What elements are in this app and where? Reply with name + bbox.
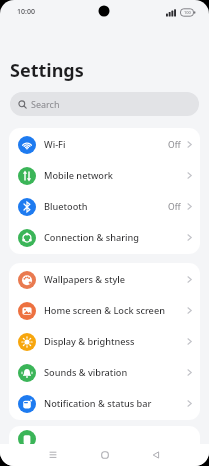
button[interactable]: Sounds & vibration <box>9 357 200 388</box>
button[interactable] <box>9 426 200 457</box>
staticText: Connection & sharing <box>44 231 186 244</box>
button[interactable] <box>46 448 60 462</box>
staticText: Bluetooth <box>44 200 168 213</box>
button[interactable] <box>98 448 112 462</box>
button[interactable]: Connection & sharing <box>9 222 200 253</box>
button[interactable]: Notification & status bar <box>9 388 200 419</box>
button[interactable]: Mobile network <box>9 160 200 191</box>
staticText: Settings <box>10 58 84 83</box>
staticText: Notification & status bar <box>44 397 186 410</box>
staticText: Sounds & vibration <box>44 366 186 379</box>
staticText: Wallpapers & style <box>44 273 186 286</box>
button[interactable]: Search <box>10 92 199 116</box>
staticText: 100 <box>184 10 191 15</box>
button[interactable] <box>149 448 163 462</box>
button[interactable]: Bluetooth <box>9 191 200 222</box>
button[interactable]: Home screen & Lock screen <box>9 295 200 326</box>
staticText: Search <box>31 98 60 110</box>
button[interactable]: Wallpapers & style <box>9 264 200 295</box>
staticText: Mobile network <box>44 169 186 182</box>
staticText: Off <box>168 201 181 213</box>
staticText: 10:00 <box>17 7 35 17</box>
staticText: Wi-Fi <box>44 138 168 151</box>
button[interactable]: Wi-Fi <box>9 129 200 160</box>
button[interactable]: Display & brightness <box>9 326 200 357</box>
staticText: Off <box>168 139 181 151</box>
staticText: Home screen & Lock screen <box>44 304 186 317</box>
staticText: Display & brightness <box>44 335 186 348</box>
